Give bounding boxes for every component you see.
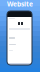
staticText: Website — [7, 0, 33, 8]
